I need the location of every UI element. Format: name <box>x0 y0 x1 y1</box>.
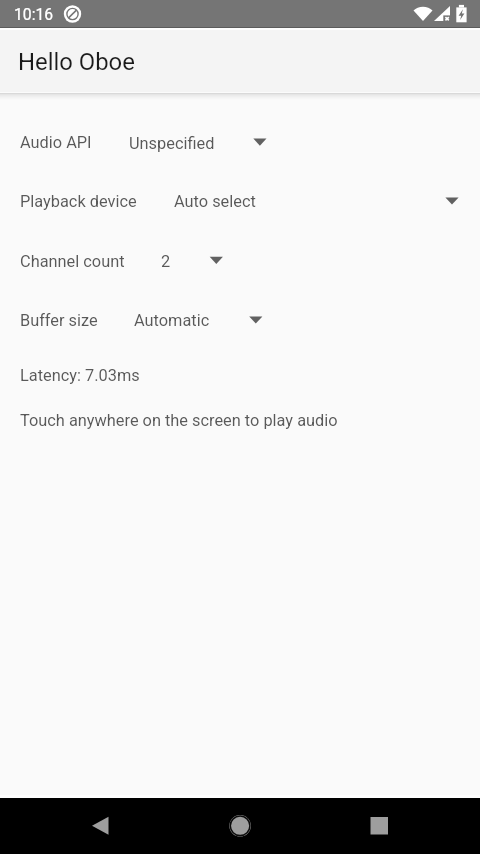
button[interactable]: Playback device Auto select <box>165 183 462 217</box>
button[interactable]: Back <box>72 798 128 854</box>
button[interactable]: Audio API Unspecified <box>120 125 270 159</box>
staticText: Channel count <box>20 252 125 271</box>
button[interactable]: Touch anywhere on the screen to play aud… <box>0 93 480 798</box>
staticText: 2 <box>161 252 171 271</box>
staticText: Hello Oboe <box>18 48 135 76</box>
staticText: Automatic <box>134 311 210 330</box>
staticText: Touch anywhere on the screen to play aud… <box>20 411 338 430</box>
button[interactable]: Recent apps <box>351 798 407 854</box>
staticText: Playback device <box>20 192 137 211</box>
button[interactable]: Home <box>212 798 268 854</box>
staticText: Auto select <box>174 192 256 211</box>
staticText: Unspecified <box>129 134 215 153</box>
staticText: 10:16 <box>14 5 54 23</box>
staticText: Audio API <box>20 133 92 152</box>
staticText: Latency: 7.03ms <box>20 366 140 385</box>
staticText: Buffer size <box>20 311 98 330</box>
button[interactable]: Buffer size Automatic <box>125 302 265 336</box>
button[interactable]: Channel count 2 <box>152 243 226 277</box>
